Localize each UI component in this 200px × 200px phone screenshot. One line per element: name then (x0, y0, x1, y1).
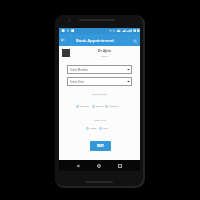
staticText: Online (90, 127, 97, 130)
staticText: NEXT (97, 144, 104, 148)
staticText: Select Clinic (70, 80, 85, 84)
staticText: Regular (96, 105, 104, 108)
button[interactable]: Clinic (99, 127, 109, 130)
staticText: Dentist (101, 55, 109, 58)
button[interactable]: Recent apps (115, 161, 124, 170)
staticText: First Visit (80, 105, 89, 108)
staticText: Dr Ajita (98, 48, 111, 53)
button[interactable]: Back (73, 161, 82, 170)
staticText: Select Member (70, 68, 89, 72)
staticText: Book Appointment (76, 37, 114, 43)
button[interactable]: First Visit (76, 105, 89, 108)
button[interactable]: Select Member (67, 65, 132, 74)
button[interactable]: Navigate up (60, 37, 66, 43)
button[interactable]: Search (131, 37, 138, 44)
button[interactable]: Select Clinic (67, 77, 132, 86)
button[interactable]: Regular (92, 105, 104, 108)
button[interactable]: NEXT (90, 141, 111, 151)
staticText: Select a Slot (94, 119, 106, 122)
staticText: Clinic (103, 127, 109, 130)
button[interactable]: Follow Up (105, 105, 119, 108)
staticText: Select Visit Type (92, 93, 107, 96)
button[interactable]: Home (94, 161, 103, 170)
staticText: Follow Up (109, 105, 119, 108)
button[interactable]: Online (86, 127, 97, 130)
